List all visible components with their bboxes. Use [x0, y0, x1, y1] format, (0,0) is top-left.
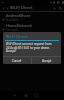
button[interactable]: AndroidShare: [0, 12, 64, 22]
staticText: HomeNetwork: [6, 23, 33, 28]
staticText: Wi-Fi Direct connect request from 22:4c:…: [6, 42, 58, 53]
button[interactable]: Back: [9, 91, 20, 100]
staticText: Wi-Fi Direct: [10, 5, 33, 11]
staticText: Accept: [42, 59, 52, 63]
button[interactable]: Accept: [32, 57, 61, 64]
staticText: Secured: [6, 28, 18, 32]
staticText: Cancel: [12, 59, 22, 63]
button[interactable]: Navigate up: [1, 6, 5, 10]
button[interactable]: Home: [20, 91, 31, 100]
button[interactable]: Add network: [51, 5, 57, 11]
staticText: Available: [6, 18, 19, 22]
button[interactable]: HomeNetwork: [0, 22, 64, 32]
button[interactable]: Search: [57, 5, 63, 11]
button[interactable]: Cancel: [3, 57, 31, 64]
button[interactable]: Recent apps: [31, 91, 42, 100]
staticText: Wi-Fi Direct: [6, 34, 28, 39]
staticText: AndroidShare: [6, 13, 31, 18]
